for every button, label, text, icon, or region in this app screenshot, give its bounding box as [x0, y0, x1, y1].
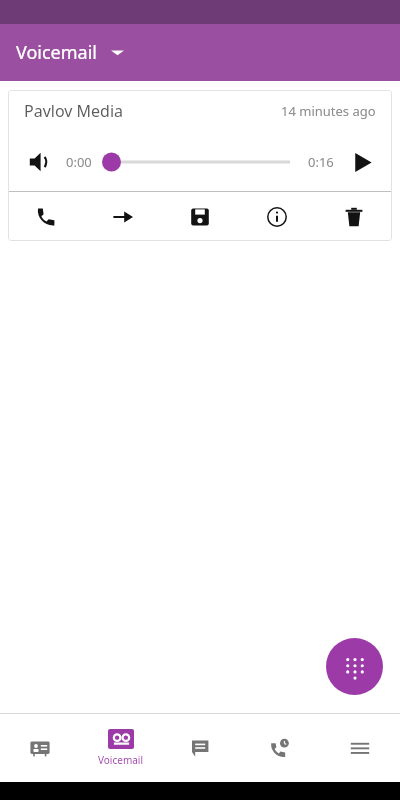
staticText: Pavlov Media [24, 100, 124, 122]
button[interactable]: Dialpad [326, 638, 383, 695]
button[interactable]: Voicemail [80, 714, 160, 782]
staticText: 0:16 [308, 153, 334, 171]
button[interactable]: Play [346, 146, 378, 178]
button[interactable]: Seek [102, 149, 298, 175]
button[interactable]: Contacts [0, 714, 80, 782]
button[interactable]: Details [238, 192, 315, 241]
button[interactable]: Call [8, 192, 84, 241]
staticText: Voicemail [98, 753, 143, 767]
button[interactable]: Speaker [22, 145, 56, 179]
button[interactable]: Save [161, 192, 238, 241]
staticText: 0:00 [66, 153, 92, 171]
staticText: Voicemail [16, 40, 97, 65]
button[interactable]: Delete [315, 192, 392, 241]
button[interactable]: Menu [320, 714, 400, 782]
button[interactable]: Voicemail [0, 24, 400, 81]
staticText: 14 minutes ago [281, 102, 376, 120]
button[interactable]: Recents [240, 714, 320, 782]
button[interactable]: Messages [160, 714, 240, 782]
button[interactable]: Share [84, 192, 161, 241]
